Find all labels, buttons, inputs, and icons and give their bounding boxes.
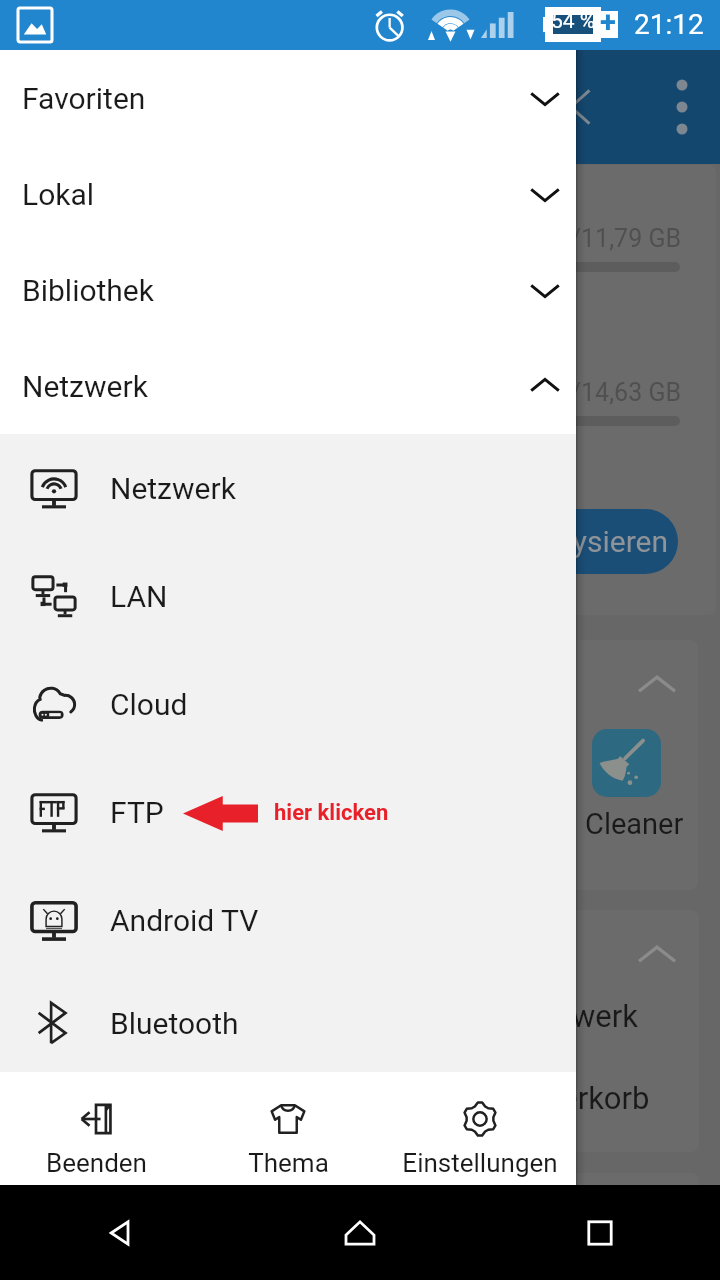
other: Einstellungen (461, 1100, 499, 1138)
button[interactable]: Einstellungen (384, 1072, 576, 1185)
staticText: Cloud (110, 687, 188, 722)
button[interactable]: Cleaner (592, 729, 661, 797)
staticText: hier klicken (274, 800, 389, 826)
button[interactable]: More options (652, 77, 712, 137)
button[interactable]: Netzwerk (0, 338, 576, 434)
button[interactable]: Lokal (0, 146, 576, 242)
staticText: 54 % (549, 9, 597, 34)
button[interactable]: Thema (192, 1072, 384, 1185)
button[interactable]: Bibliothek (0, 242, 576, 338)
other: Bluetooth (30, 999, 78, 1047)
button[interactable]: Analysieren (414, 509, 678, 574)
staticText: Thema (248, 1148, 329, 1178)
staticText: 21:12 (634, 8, 704, 41)
other: FTP (30, 788, 78, 836)
staticText: Interner Speicher 4,25/11,79 GB (10, 224, 681, 253)
staticText: Bibliothek (22, 273, 154, 308)
button[interactable]: Favoriten (0, 50, 576, 146)
button[interactable]: Beenden (0, 1072, 192, 1185)
other: LAN (30, 572, 78, 620)
staticText: + (598, 5, 618, 32)
button[interactable]: Recents (480, 1185, 720, 1280)
other: Beenden (77, 1100, 115, 1138)
button[interactable]: Netzwerk (0, 434, 576, 542)
button[interactable]: Collapse (635, 663, 679, 707)
button[interactable]: Home (240, 1185, 480, 1280)
button[interactable]: Cloud (0, 650, 576, 758)
button[interactable]: Back (0, 1185, 240, 1280)
button[interactable]: Bluetooth (0, 974, 576, 1072)
staticText: Netzwerk (22, 369, 148, 404)
staticText: Einstellungen (402, 1148, 558, 1178)
other: Cloud (30, 680, 78, 728)
staticText: Papierkorb (500, 1080, 650, 1116)
button[interactable]: Android TV (0, 866, 576, 974)
other: Thema (269, 1100, 307, 1138)
staticText: Beenden (46, 1148, 147, 1178)
staticText: Favoriten (22, 81, 146, 116)
button[interactable]: LAN (0, 542, 576, 650)
other: Android TV (30, 896, 78, 944)
staticText: SD-Karte 10,54/14,63 GB (10, 378, 681, 407)
staticText: Analysieren (513, 524, 668, 559)
button[interactable]: Back (558, 84, 604, 130)
staticText: Netzwerk (110, 471, 236, 506)
staticText: Cleaner (585, 807, 684, 841)
staticText: LAN (110, 579, 168, 614)
staticText: FTP (110, 795, 164, 830)
staticText: Lokal (22, 177, 95, 212)
staticText: Bluetooth (110, 1006, 239, 1041)
button[interactable]: FTP (0, 758, 576, 866)
button[interactable]: Collapse (635, 933, 679, 977)
staticText: Netzwerk (508, 998, 639, 1034)
other: Netzwerk (30, 464, 78, 512)
staticText: Android TV (110, 903, 259, 938)
